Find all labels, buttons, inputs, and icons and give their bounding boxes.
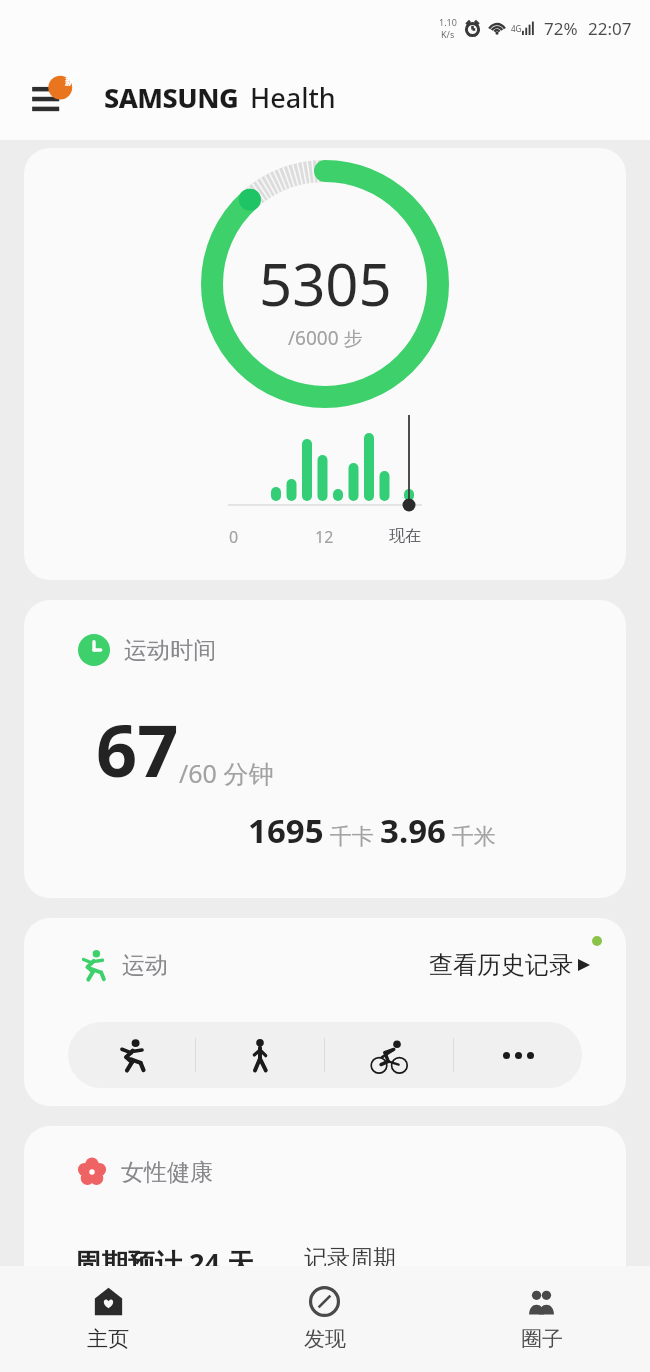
staticText: 0 — [229, 526, 239, 548]
staticText: /6000 步 — [288, 325, 363, 351]
staticText: /60 分钟 — [179, 756, 274, 790]
button[interactable]: 记录周期 — [278, 1244, 422, 1266]
button[interactable]: Running — [68, 1022, 195, 1088]
staticText: 周期预计 24 天 — [74, 1244, 254, 1266]
button[interactable]: 圈子 — [433, 1266, 650, 1372]
staticText: 72% — [544, 17, 578, 40]
staticText: 女性健康 — [121, 1158, 213, 1187]
staticText: 4G — [511, 23, 522, 34]
staticText: 运动 — [122, 951, 168, 980]
button[interactable]: 查看历史记录 — [429, 950, 590, 980]
button[interactable]: 主页 — [0, 1266, 216, 1372]
staticText: 3.96 — [380, 808, 446, 853]
button[interactable]: Menu — [28, 72, 80, 124]
staticText: 圈子 — [521, 1326, 563, 1352]
button[interactable]: 发现 — [216, 1266, 433, 1372]
staticText: 千米 — [446, 820, 496, 850]
staticText: 运动时间 — [124, 636, 216, 665]
staticText: 查看历史记录 — [429, 950, 573, 980]
staticText: 主页 — [87, 1326, 129, 1352]
staticText: 5305 — [259, 244, 392, 323]
staticText: 发现 — [304, 1326, 346, 1352]
staticText: 现在 — [389, 526, 421, 546]
staticText: 千卡 — [324, 820, 380, 850]
button[interactable]: More — [454, 1022, 582, 1088]
staticText: SAMSUNG — [104, 79, 239, 116]
button[interactable]: 运动 — [24, 918, 626, 1106]
staticText: 12 — [315, 526, 334, 548]
staticText: Health — [250, 79, 336, 116]
button[interactable]: Cycling — [325, 1022, 453, 1088]
staticText: 新 — [65, 76, 74, 87]
staticText: 记录周期 — [304, 1244, 396, 1266]
button[interactable]: 5305 — [24, 148, 626, 580]
staticText: 22:07 — [588, 17, 632, 40]
staticText: K/s — [441, 28, 455, 40]
button[interactable]: 运动时间 — [24, 600, 626, 898]
button[interactable]: Walking — [196, 1022, 324, 1088]
staticText: 1695 — [248, 808, 324, 853]
button[interactable]: 女性健康 — [24, 1126, 626, 1266]
staticText: 67 — [96, 700, 179, 798]
staticText: 1.10 — [439, 16, 457, 28]
